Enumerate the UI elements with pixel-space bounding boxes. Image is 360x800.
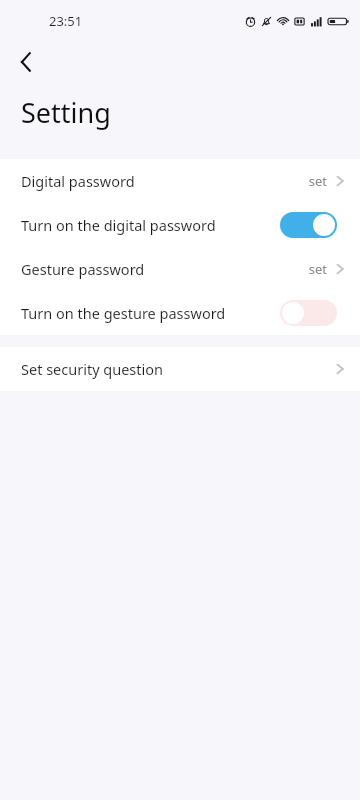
button[interactable]: Turn on the digital password [0, 203, 360, 247]
button[interactable]: Switch on [280, 212, 337, 238]
button[interactable]: Digital password [0, 159, 360, 203]
button[interactable]: Turn on the gesture password [0, 291, 360, 335]
button[interactable]: Set security question [0, 347, 360, 391]
button[interactable]: Gesture password [0, 247, 360, 291]
button[interactable]: Switch off [280, 300, 337, 326]
staticText: Turn on the gesture password [21, 303, 280, 323]
staticText: set [308, 260, 327, 278]
staticText: Set security question [21, 359, 334, 379]
staticText: 23:51 [49, 12, 83, 30]
staticText: set [308, 172, 327, 190]
button[interactable]: Back [8, 44, 44, 80]
staticText: Setting [21, 94, 111, 131]
staticText: Turn on the digital password [21, 215, 280, 235]
staticText: Gesture password [21, 259, 308, 279]
staticText: Digital password [21, 171, 308, 191]
